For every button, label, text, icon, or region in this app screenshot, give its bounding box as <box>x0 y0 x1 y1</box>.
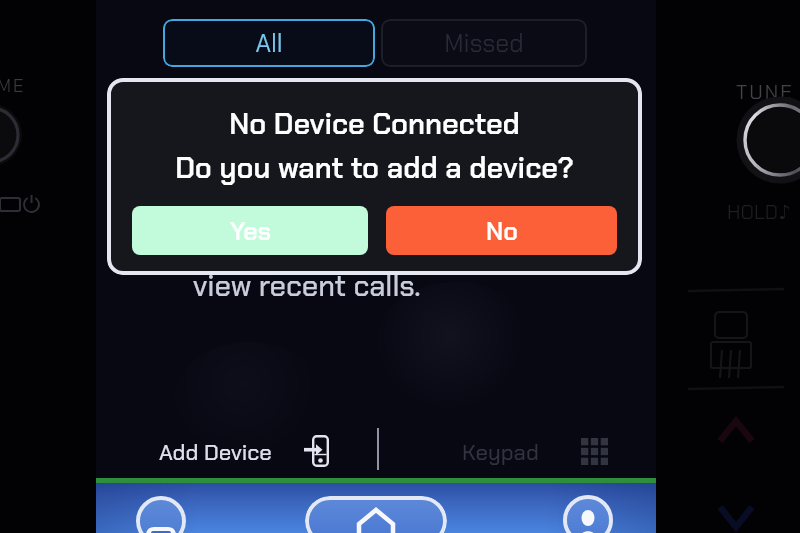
staticText: Yes <box>230 215 271 247</box>
staticText: HOLD♪ <box>727 199 791 225</box>
button[interactable]: Yes <box>132 206 368 255</box>
staticText: No Device Connected <box>107 105 642 143</box>
staticText: Add Device <box>159 438 272 467</box>
button[interactable]: Media <box>132 496 190 533</box>
button[interactable]: Missed <box>381 19 587 67</box>
staticText: ME <box>0 74 26 97</box>
button[interactable]: No <box>386 206 617 255</box>
staticText: TUNE <box>736 79 794 105</box>
other: Add Device <box>304 435 329 467</box>
button[interactable]: Keypad <box>386 422 650 474</box>
staticText: Keypad <box>462 438 539 467</box>
staticText: All <box>255 27 283 59</box>
staticText: No <box>486 215 518 247</box>
button[interactable]: All <box>163 19 375 67</box>
button[interactable]: Profile <box>559 495 617 533</box>
staticText: Missed <box>444 27 524 59</box>
other: Keypad <box>581 438 608 465</box>
staticText: Do you want to add a device? <box>107 149 642 187</box>
button[interactable]: Add Device <box>102 422 377 474</box>
button[interactable]: Home <box>305 496 447 533</box>
staticText: view recent calls. <box>193 267 421 305</box>
